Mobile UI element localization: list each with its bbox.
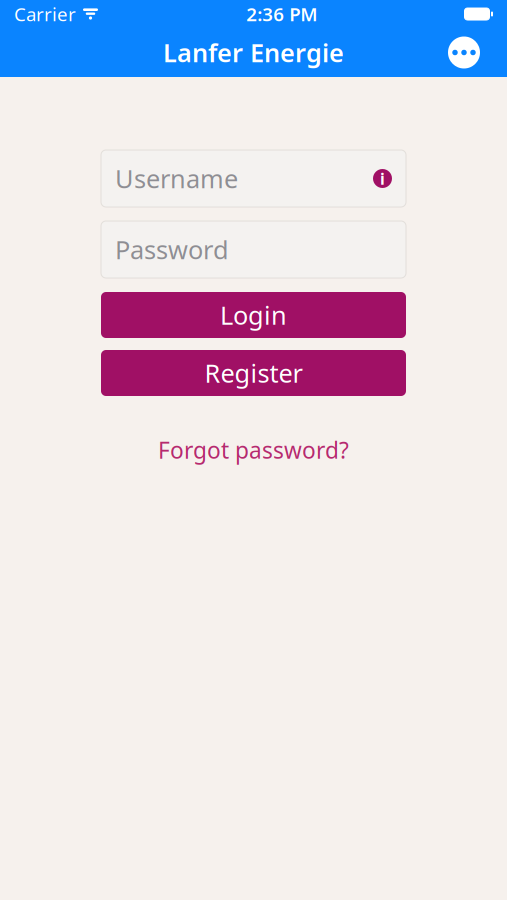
staticText: Carrier bbox=[14, 2, 76, 26]
staticText: Forgot password? bbox=[158, 435, 349, 465]
staticText: Username bbox=[115, 162, 238, 195]
staticText: 2:36 PM bbox=[246, 2, 317, 26]
staticText: Lanfer Energie bbox=[163, 36, 344, 69]
button[interactable]: More options bbox=[442, 30, 486, 74]
button[interactable]: Register bbox=[101, 350, 406, 396]
staticText: i bbox=[380, 168, 385, 189]
staticText: Register bbox=[204, 356, 302, 390]
button[interactable]: Forgot password? bbox=[148, 430, 359, 470]
button[interactable]: Login bbox=[101, 292, 406, 338]
staticText: Login bbox=[220, 298, 287, 332]
staticText: Password bbox=[115, 233, 229, 266]
